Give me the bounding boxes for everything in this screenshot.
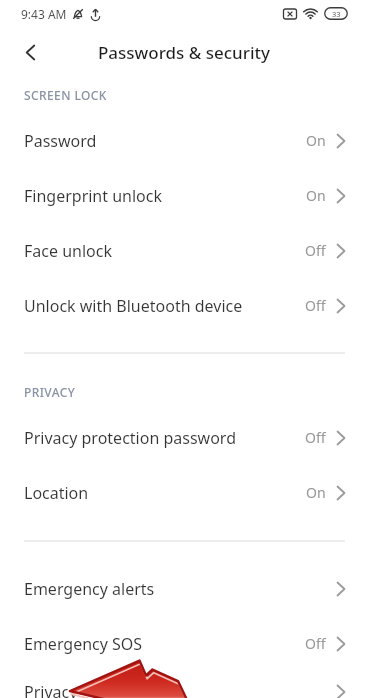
staticText: Off bbox=[305, 296, 326, 315]
staticText: 33 bbox=[332, 9, 341, 19]
staticText: Password bbox=[24, 130, 97, 152]
staticText: Face unlock bbox=[24, 240, 112, 262]
staticText: Privacy bbox=[24, 681, 78, 698]
staticText: Off bbox=[305, 634, 326, 653]
staticText: Emergency alerts bbox=[24, 578, 155, 600]
button[interactable]: Fingerprint unlock bbox=[0, 168, 369, 223]
staticText: Fingerprint unlock bbox=[24, 185, 163, 207]
button[interactable]: Password bbox=[0, 113, 369, 168]
staticText: Unlock with Bluetooth device bbox=[24, 295, 243, 317]
staticText: Off bbox=[305, 428, 326, 447]
staticText: On bbox=[306, 483, 326, 502]
staticText: Passwords & security bbox=[98, 41, 271, 64]
button[interactable]: Unlock with Bluetooth device bbox=[0, 278, 369, 333]
staticText: Location bbox=[24, 482, 89, 504]
staticText: Emergency SOS bbox=[24, 633, 143, 655]
staticText: 9:43 AM bbox=[21, 6, 67, 22]
staticText: On bbox=[306, 186, 326, 205]
button[interactable]: Location bbox=[0, 465, 369, 520]
button[interactable]: Privacy protection password bbox=[0, 410, 369, 465]
button[interactable] bbox=[14, 36, 46, 68]
staticText: Privacy protection password bbox=[24, 427, 236, 449]
staticText: On bbox=[306, 131, 326, 150]
button[interactable]: Face unlock bbox=[0, 223, 369, 278]
button[interactable]: Emergency SOS bbox=[0, 616, 369, 671]
button[interactable]: Privacy bbox=[0, 669, 369, 698]
staticText: PRIVACY bbox=[24, 384, 76, 400]
staticText: Off bbox=[305, 241, 326, 260]
staticText: SCREEN LOCK bbox=[24, 87, 107, 103]
button[interactable]: Emergency alerts bbox=[0, 561, 369, 616]
